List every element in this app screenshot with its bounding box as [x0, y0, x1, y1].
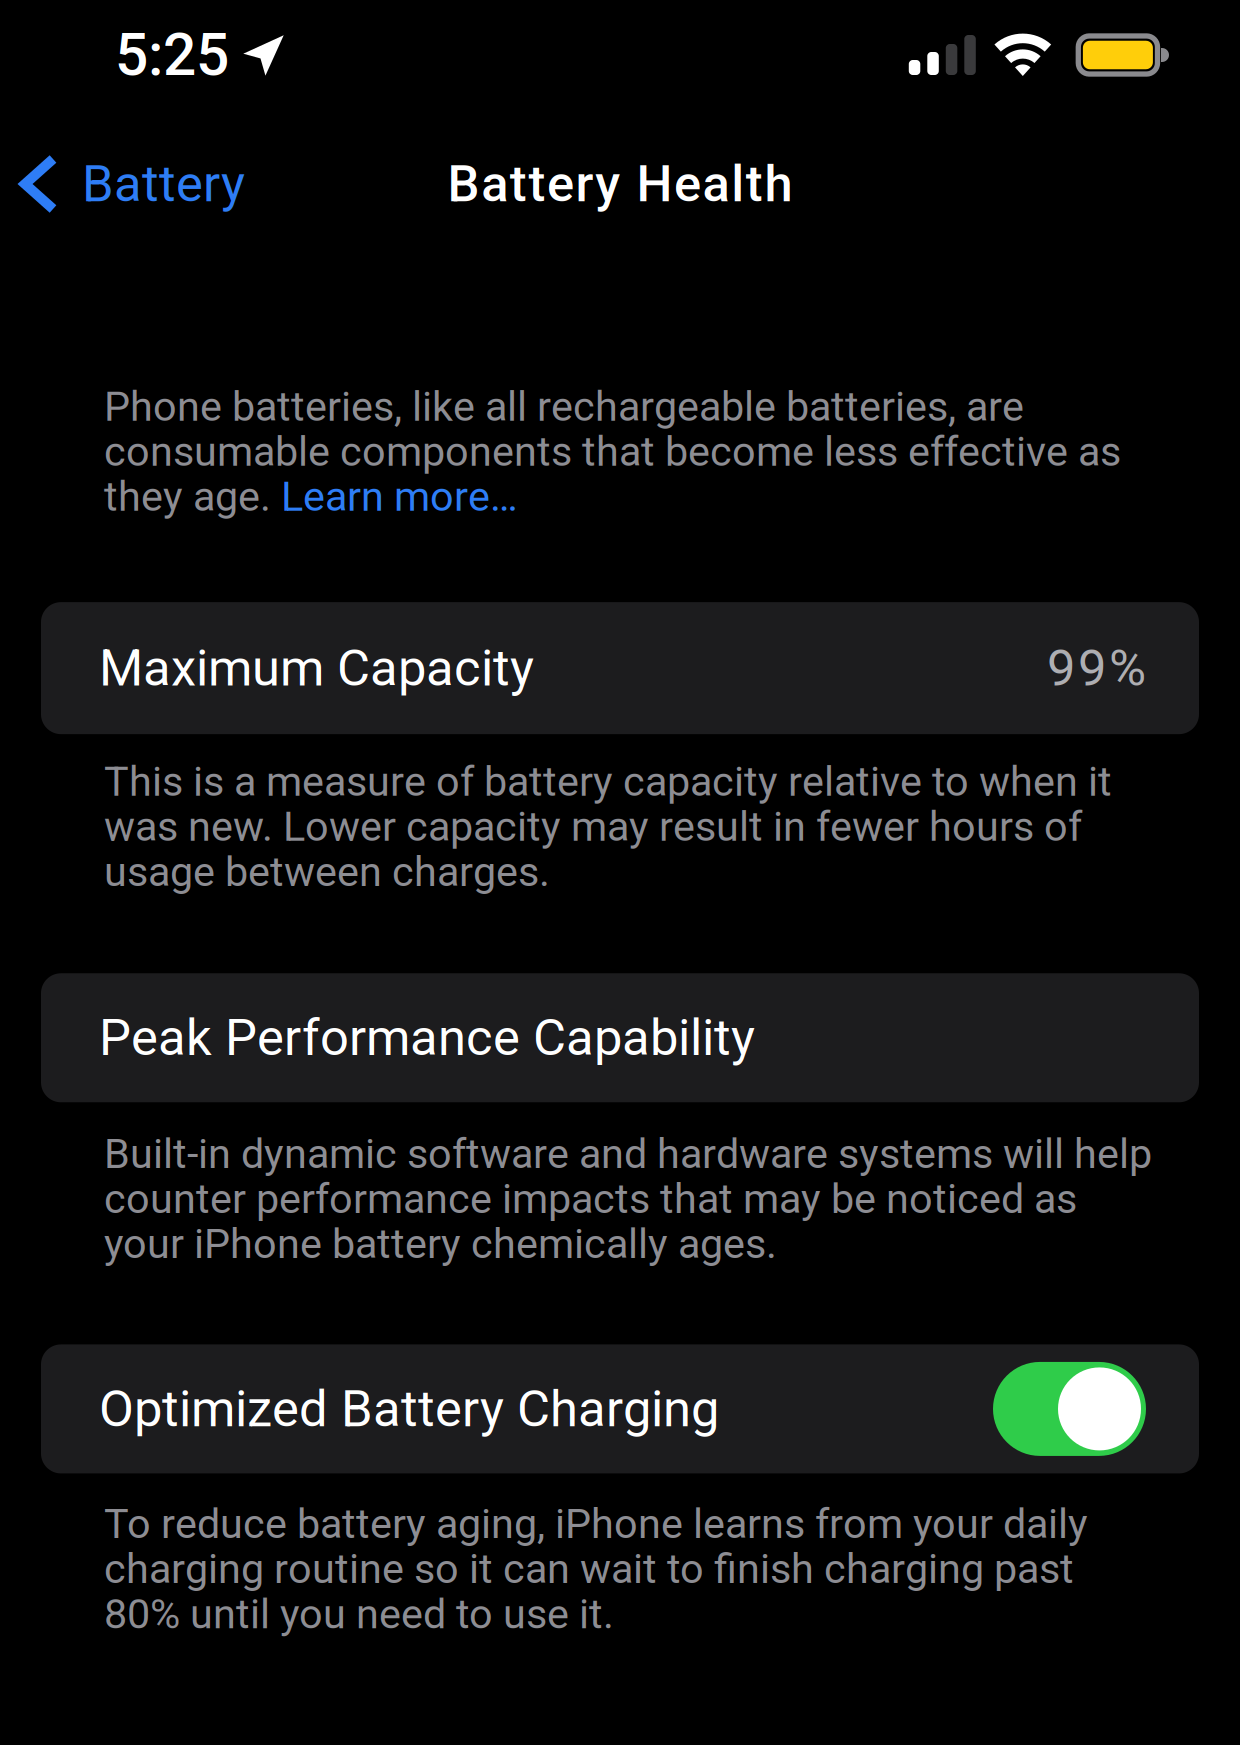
staticText: Phone batteries, like all rechargeable b…	[104, 384, 1121, 519]
staticText: Battery Health	[448, 156, 792, 212]
staticText: 5:25	[115, 23, 229, 87]
staticText: Built-in dynamic software and hardware s…	[104, 1131, 1152, 1266]
button[interactable]: Optimized Battery Charging	[41, 1344, 1199, 1473]
staticText: To reduce battery aging, iPhone learns f…	[104, 1501, 1088, 1636]
staticText: Battery	[82, 156, 245, 212]
staticText: This is a measure of battery capacity re…	[104, 759, 1112, 894]
staticText: Maximum Capacity	[99, 640, 534, 696]
staticText: Optimized Battery Charging	[99, 1381, 719, 1436]
staticText: 99%	[1047, 640, 1146, 696]
button[interactable]: Maximum Capacity	[41, 602, 1199, 734]
button[interactable]: Battery	[0, 134, 269, 234]
staticText: Peak Performance Capability	[99, 1010, 755, 1065]
button[interactable]: Peak Performance Capability	[41, 973, 1199, 1102]
